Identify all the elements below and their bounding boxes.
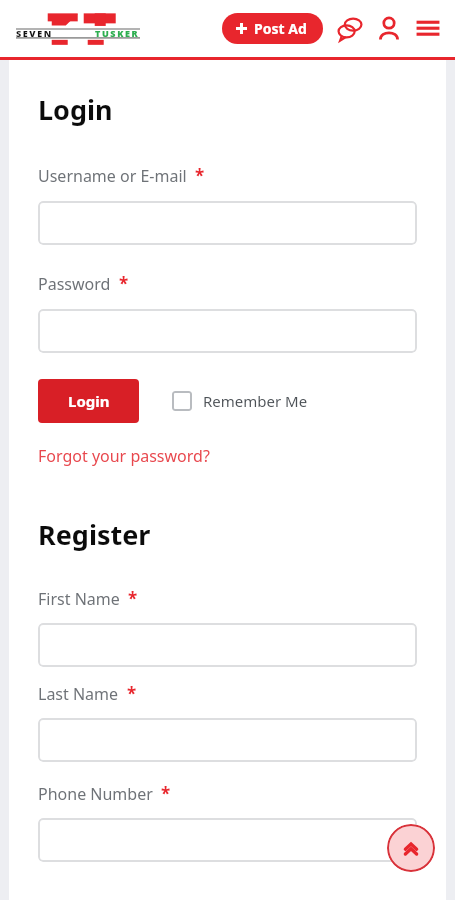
staticText: Username or E-mail (38, 165, 187, 187)
staticText: * (128, 587, 138, 610)
staticText: * (119, 272, 129, 295)
button[interactable]: Messages (337, 16, 363, 42)
button[interactable] (38, 718, 417, 762)
button[interactable] (38, 309, 417, 353)
staticText: Login (38, 91, 113, 128)
staticText: Remember Me (203, 391, 308, 411)
button[interactable]: Login (38, 379, 139, 423)
button[interactable]: Account (376, 16, 402, 42)
staticText: SEVEN (16, 27, 53, 39)
button[interactable]: Remember Me (170, 385, 310, 417)
button[interactable] (38, 623, 417, 667)
staticText: Forgot your password? (38, 445, 210, 467)
staticText: Post Ad (254, 19, 307, 38)
staticText: First Name (38, 588, 120, 610)
button[interactable]: Scroll to top (387, 824, 435, 872)
button[interactable] (38, 201, 417, 245)
staticText: * (127, 682, 137, 705)
staticText: Last Name (38, 683, 119, 705)
staticText: Login (68, 391, 110, 411)
button[interactable]: Forgot your password? (38, 445, 210, 467)
button[interactable]: Menu (415, 16, 441, 42)
button[interactable]: Seven Tusker home (16, 12, 140, 46)
staticText: Password (38, 273, 111, 295)
button[interactable] (38, 818, 417, 862)
staticText: Register (38, 516, 151, 553)
button[interactable]: Post Ad (222, 13, 323, 44)
staticText: * (195, 164, 205, 187)
staticText: TUSKER (95, 27, 140, 39)
staticText: * (161, 782, 171, 805)
staticText: Phone Number (38, 783, 153, 805)
